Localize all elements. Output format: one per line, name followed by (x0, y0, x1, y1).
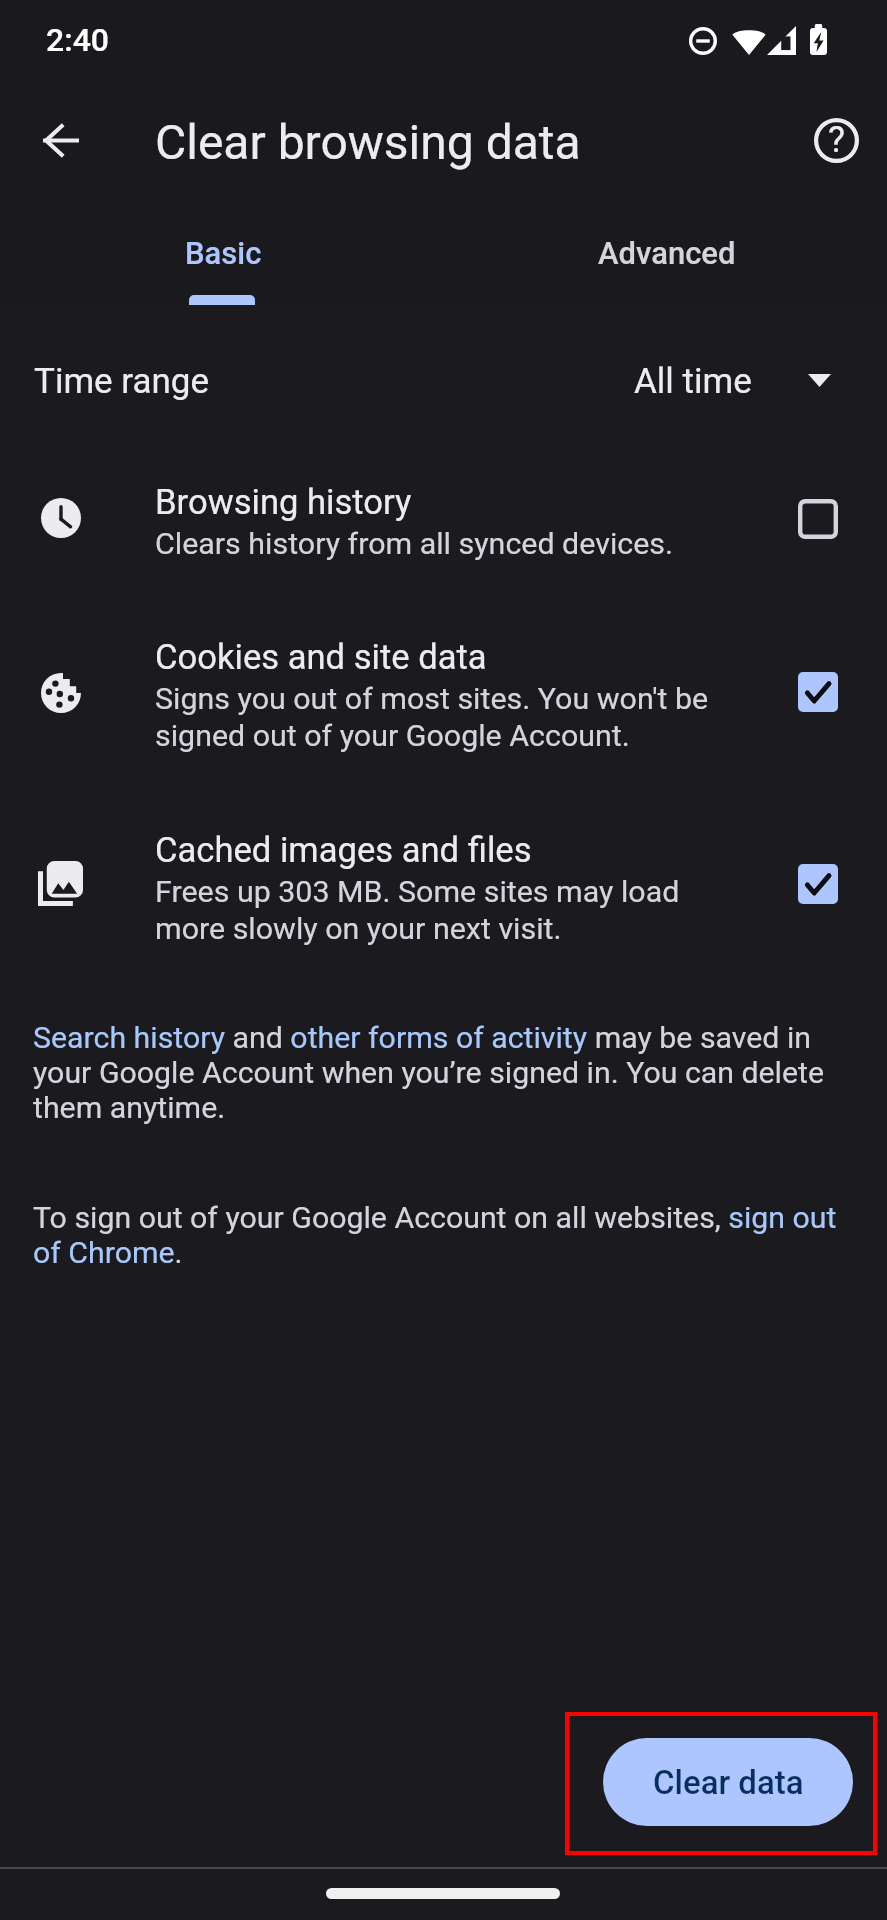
button[interactable]: Not selected (787, 488, 849, 550)
staticText: Clear data (653, 1763, 804, 1802)
button[interactable]: Help (800, 104, 872, 176)
staticText: Frees up 303 MB. Some sites may load mor… (155, 874, 680, 947)
staticText: Advanced (598, 235, 736, 271)
staticText: Search history and other forms of activi… (33, 1020, 825, 1125)
staticText: Signs you out of most sites. You won't b… (155, 681, 709, 754)
button[interactable]: Selected (787, 661, 849, 723)
staticText: Browsing history (155, 482, 412, 523)
staticText: Basic (185, 235, 262, 271)
button[interactable]: Cookies and site data (0, 620, 887, 770)
button[interactable]: Clear data (603, 1738, 853, 1826)
staticText: Clears history from all synced devices. (155, 526, 673, 562)
button[interactable]: Selected (787, 853, 849, 915)
staticText: To sign out of your Google Account on al… (33, 1200, 837, 1270)
button[interactable]: Time range (0, 330, 887, 430)
button[interactable]: Browsing history (0, 460, 887, 575)
staticText: Time range (34, 361, 210, 402)
button[interactable]: Advanced (443, 200, 887, 305)
button[interactable]: Back (25, 104, 97, 176)
staticText: Clear browsing data (155, 114, 581, 170)
button[interactable]: Basic (0, 200, 443, 305)
staticText: ? (828, 119, 846, 161)
button[interactable]: Cached images and files (0, 810, 887, 960)
staticText: Cached images and files (155, 830, 532, 871)
staticText: Cookies and site data (155, 637, 487, 678)
staticText: 2:40 (46, 21, 109, 59)
staticText: All time (634, 361, 752, 402)
